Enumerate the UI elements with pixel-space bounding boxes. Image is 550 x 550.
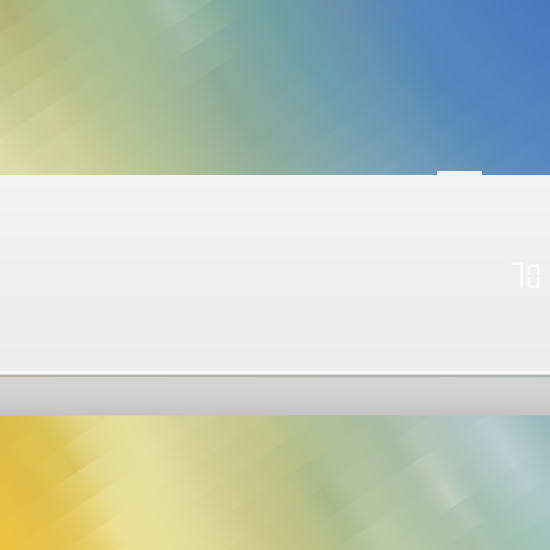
button[interactable]: Air conditioner, set to 70 degrees (0, 0, 550, 550)
